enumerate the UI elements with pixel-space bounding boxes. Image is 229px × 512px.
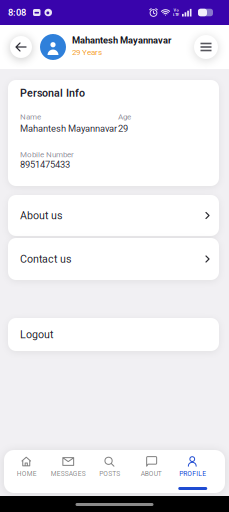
button[interactable]: POSTS [89, 450, 130, 493]
staticText: Contact us [20, 253, 72, 265]
staticText: About us [20, 209, 63, 222]
staticText: ABOUT [141, 470, 162, 478]
staticText: HOME [17, 470, 37, 478]
button[interactable]: Back [10, 36, 32, 58]
staticText: LTE [173, 12, 179, 17]
staticText: Age [118, 112, 131, 121]
button[interactable]: Logout [8, 318, 219, 351]
staticText: Logout [20, 328, 53, 341]
staticText: Name [20, 112, 41, 121]
button[interactable]: Contact us [8, 238, 219, 280]
staticText: Personal Info [20, 87, 85, 99]
staticText: MESSAGES [51, 470, 86, 478]
button[interactable]: PROFILE [172, 450, 213, 493]
button[interactable]: MESSAGES [47, 450, 89, 493]
button[interactable]: About us [8, 195, 219, 236]
staticText: 8951475433 [20, 159, 70, 170]
staticText: PROFILE [179, 470, 206, 478]
staticText: 8:08 [8, 7, 26, 18]
button[interactable]: HOME [6, 450, 47, 493]
staticText: 29 Years [72, 48, 102, 57]
staticText: Mobile Number [20, 150, 74, 159]
button[interactable]: Menu [194, 35, 218, 59]
button[interactable]: ABOUT [130, 450, 172, 493]
staticText: Vo [173, 8, 178, 12]
staticText: 29 [118, 123, 128, 134]
staticText: Mahantesh Mayannavar [20, 123, 117, 134]
staticText: Mahantesh Mayannavar [72, 35, 171, 46]
staticText: POSTS [99, 470, 120, 478]
